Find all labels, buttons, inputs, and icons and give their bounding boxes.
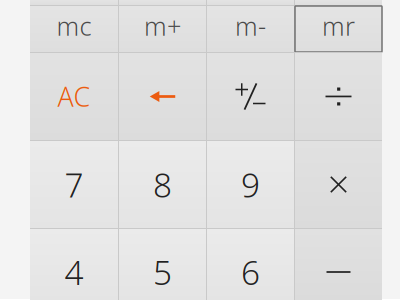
staticText: AC: [57, 79, 90, 114]
button[interactable]: Plus minus: [207, 53, 294, 140]
button[interactable]: Backspace: [119, 53, 206, 140]
button[interactable]: 4: [30, 229, 118, 300]
staticText: m-: [235, 9, 266, 43]
staticText: 4: [64, 250, 83, 294]
button[interactable]: 9: [207, 141, 294, 228]
staticText: mr: [322, 9, 355, 43]
button[interactable]: m-: [207, 6, 294, 52]
button[interactable]: 5: [119, 229, 206, 300]
button[interactable]: Divide: [295, 53, 382, 140]
button[interactable]: Multiply: [295, 141, 382, 228]
staticText: 9: [241, 162, 260, 207]
button[interactable]: 7: [30, 141, 118, 228]
staticText: m+: [144, 9, 181, 43]
button[interactable]: 6: [207, 229, 294, 300]
button[interactable]: 8: [119, 141, 206, 228]
button[interactable]: AC: [30, 53, 118, 140]
button[interactable]: mc: [30, 6, 118, 52]
staticText: 5: [153, 250, 172, 294]
staticText: 6: [241, 250, 260, 294]
staticText: mc: [56, 9, 91, 43]
button[interactable]: m+: [119, 6, 206, 52]
staticText: 7: [64, 162, 83, 207]
staticText: 8: [153, 162, 172, 207]
button[interactable]: Subtract: [295, 229, 382, 300]
button[interactable]: mr: [295, 6, 382, 52]
